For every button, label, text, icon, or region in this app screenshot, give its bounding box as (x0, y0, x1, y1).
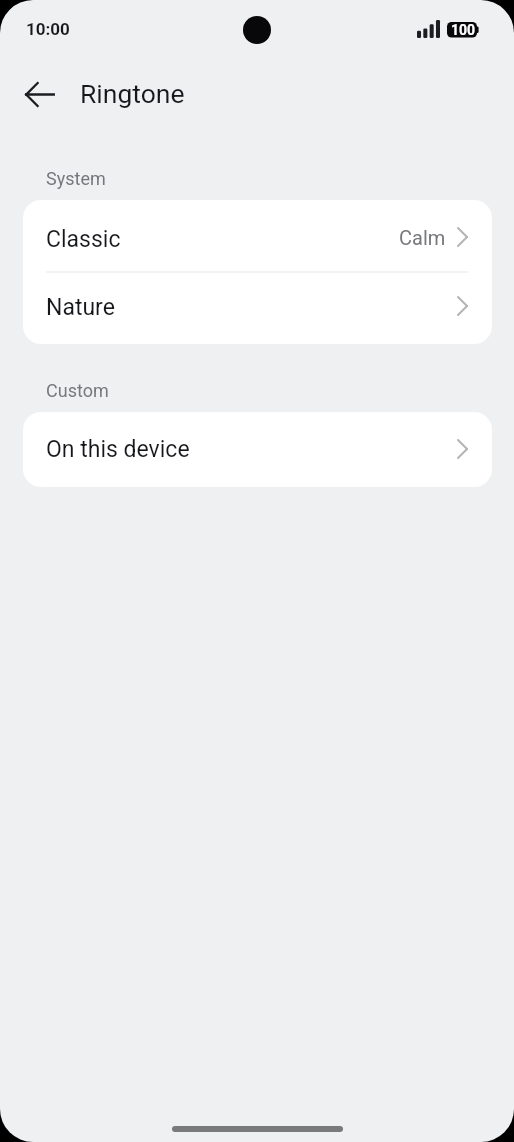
staticText: 100 (451, 22, 476, 38)
staticText: Custom (46, 380, 109, 401)
staticText: On this device (46, 436, 190, 463)
staticText: Classic (46, 226, 121, 253)
staticText: Calm (399, 226, 446, 249)
staticText: Nature (46, 294, 115, 321)
button[interactable]: Classic (23, 200, 492, 272)
button[interactable]: On this device (23, 412, 492, 486)
staticText: 10:00 (26, 19, 70, 39)
button[interactable]: Back (12, 73, 68, 115)
button[interactable]: Nature (23, 273, 492, 343)
staticText: System (46, 168, 106, 189)
staticText: Ringtone (80, 78, 185, 109)
